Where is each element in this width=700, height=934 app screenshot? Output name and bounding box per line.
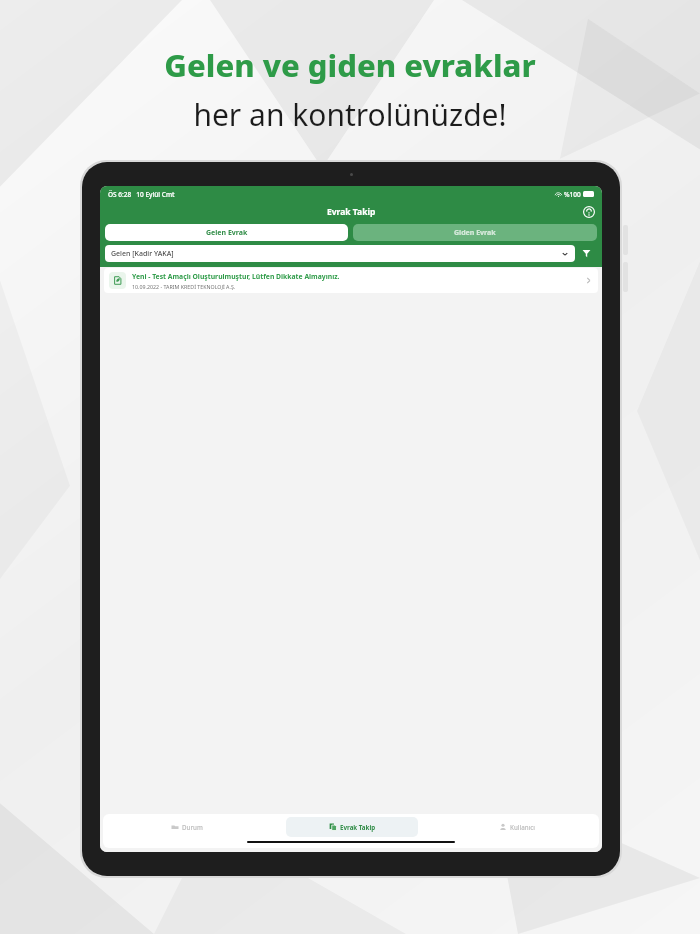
button[interactable]: Gelen [Kadir YAKA]	[105, 245, 575, 262]
button[interactable]: Filtrele	[575, 245, 597, 262]
staticText: 10.09.2022 - TARIM KREDİ TEKNOLOJİ A.Ş.	[132, 283, 236, 290]
button[interactable]: Yardım	[583, 206, 595, 218]
button[interactable]: Evrak Takip	[286, 817, 418, 837]
staticText: Yeni - Test Amaçlı Oluşturulmuştur, Lütf…	[132, 272, 340, 281]
button[interactable]: Gelen Evrak	[105, 224, 348, 241]
staticText: Gelen [Kadir YAKA]	[111, 249, 174, 259]
staticText: her an kontrolünüzde!	[193, 94, 507, 135]
staticText: %100	[564, 190, 581, 199]
staticText: Gelen ve giden evraklar	[164, 44, 536, 86]
button[interactable]: Durum	[120, 817, 253, 837]
staticText: Evrak Takip	[340, 823, 376, 831]
staticText: Kullanıcı	[510, 823, 535, 831]
staticText: Giden Evrak	[454, 228, 496, 238]
staticText: ÖS 6:28 10 Eylül Cmt	[108, 190, 175, 199]
staticText: Evrak Takip	[327, 206, 376, 218]
staticText: Durum	[182, 823, 203, 831]
button[interactable]: Kullanıcı	[451, 817, 583, 837]
staticText: Gelen Evrak	[206, 228, 248, 238]
button[interactable]: Giden Evrak	[353, 224, 597, 241]
button[interactable]: Yeni - Test Amaçlı Oluşturulmuştur, Lütf…	[104, 268, 598, 293]
